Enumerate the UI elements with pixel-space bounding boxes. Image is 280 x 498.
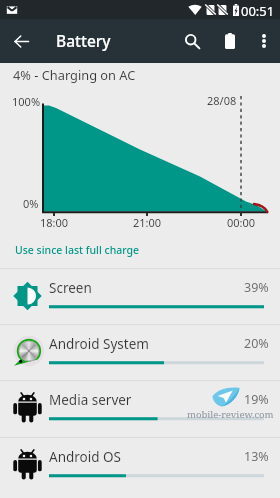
staticText: 00:51 <box>241 2 275 20</box>
button[interactable]: Search <box>173 19 212 63</box>
button[interactable]: Android OS <box>0 437 280 493</box>
staticText: 20% <box>244 335 269 352</box>
staticText: Android System <box>49 335 149 353</box>
staticText: 0% <box>23 196 39 211</box>
staticText: 13% <box>244 448 269 465</box>
button[interactable]: Use since last full charge <box>0 236 280 264</box>
button[interactable]: More options <box>247 19 280 63</box>
staticText: 39% <box>244 279 269 296</box>
staticText: 100% <box>12 94 41 109</box>
staticText: 21:00 <box>133 215 162 230</box>
staticText: Battery <box>56 30 111 51</box>
button[interactable]: Screen <box>0 268 280 324</box>
staticText: 18:00 <box>40 215 69 230</box>
staticText: Android OS <box>49 448 121 466</box>
staticText: 4% - Charging on AC <box>13 66 136 83</box>
button[interactable]: Android System <box>0 324 280 380</box>
button[interactable]: Battery status <box>212 19 247 63</box>
staticText: 19% <box>244 391 269 408</box>
staticText: 28/08 <box>207 93 237 108</box>
staticText: Screen <box>49 279 92 297</box>
staticText: 00:00 <box>227 215 256 230</box>
button[interactable]: Media server <box>0 380 280 436</box>
button[interactable]: Back <box>3 19 40 63</box>
staticText: Media server <box>49 391 132 409</box>
staticText: Use since last full charge <box>15 243 140 257</box>
staticText: mobile-review.com <box>187 408 274 421</box>
